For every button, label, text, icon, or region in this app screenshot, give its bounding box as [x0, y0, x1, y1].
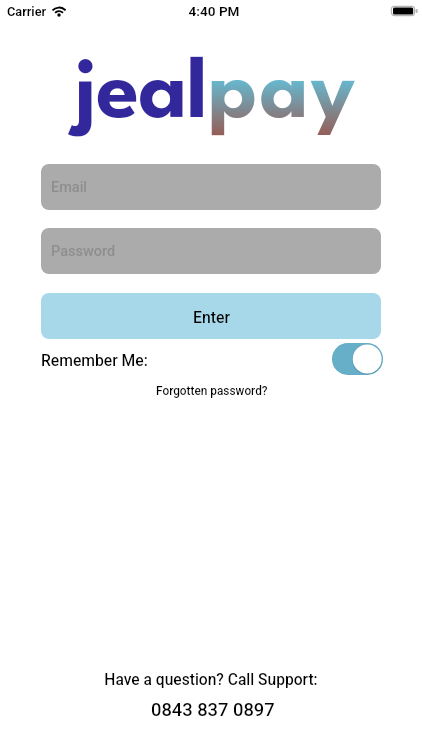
button[interactable]: 0843 837 0897 — [151, 699, 275, 721]
staticText: jeal — [74, 55, 207, 136]
button[interactable]: Remember Me, on — [332, 343, 383, 375]
button[interactable]: Enter — [41, 293, 381, 339]
staticText: Email — [51, 179, 88, 196]
staticText: Remember Me: — [41, 351, 148, 369]
staticText: Enter — [193, 308, 230, 327]
button[interactable]: Email — [41, 164, 381, 210]
other: Wi-Fi — [49, 4, 69, 18]
staticText: 4:40 PM — [3, 3, 422, 750]
button[interactable]: Password — [41, 228, 381, 274]
staticText: Have a question? Call Support: — [0, 671, 422, 750]
staticText: Carrier — [7, 4, 47, 19]
staticText: pay — [208, 55, 358, 136]
other: Battery full — [389, 4, 421, 20]
staticText: Password — [51, 243, 116, 260]
button[interactable]: Forgotten password? — [156, 384, 268, 398]
